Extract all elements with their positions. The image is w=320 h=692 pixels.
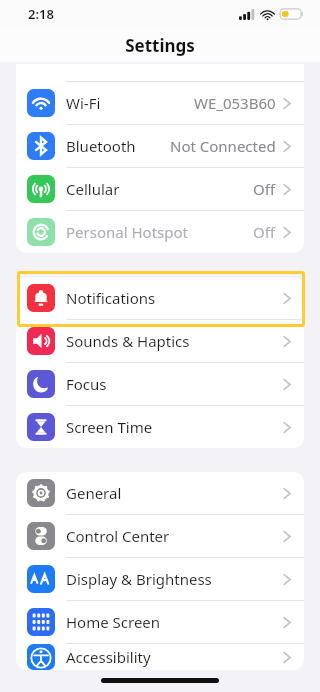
staticText: Notifications [66,288,156,308]
staticText: Settings [125,34,195,57]
staticText: 2:18 [28,5,54,23]
staticText: Accessibility [66,647,151,667]
staticText: Control Center [66,526,170,546]
staticText: Personal Hotspot [66,222,188,242]
staticText: Not Connected [170,136,276,156]
button[interactable]: Display & Brightness [16,558,304,600]
button[interactable]: Notifications [16,277,304,319]
button[interactable]: Sounds & Haptics [16,320,304,362]
staticText: Off [253,179,276,199]
button[interactable]: Bluetooth [16,125,304,167]
button[interactable]: Focus [16,363,304,405]
staticText: WE_053B60 [194,93,276,113]
staticText: Display & Brightness [66,569,212,589]
button[interactable]: Screen Time [16,406,304,448]
button[interactable]: Accessibility [16,644,304,670]
staticText: Sounds & Haptics [66,331,190,351]
staticText: Screen Time [66,417,153,437]
button[interactable]: Cellular [16,168,304,210]
button[interactable]: Home Screen [16,601,304,643]
staticText: Focus [66,374,107,394]
staticText: Wi-Fi [66,93,101,113]
staticText: Off [253,222,276,242]
staticText: Cellular [66,179,120,199]
staticText: General [66,483,122,503]
button[interactable]: General [16,472,304,514]
button[interactable]: Wi-Fi [16,82,304,124]
button[interactable]: Personal Hotspot [16,211,304,253]
staticText: Home Screen [66,612,161,632]
staticText: Bluetooth [66,136,136,156]
button[interactable]: Control Center [16,515,304,557]
